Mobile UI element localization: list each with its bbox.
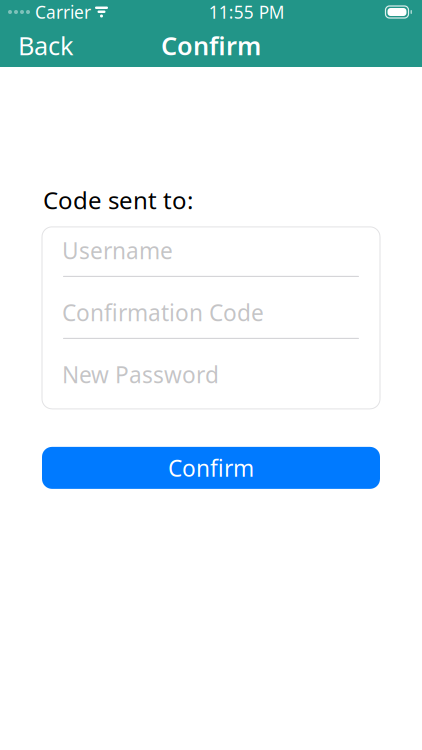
staticText: 11:55 PM: [209, 0, 285, 23]
staticText: Back: [18, 29, 74, 62]
staticText: Confirmation Code: [62, 297, 264, 327]
staticText: Carrier: [35, 0, 91, 23]
button[interactable]: Back: [8, 23, 84, 68]
staticText: Code sent to:: [43, 184, 193, 216]
staticText: New Password: [62, 359, 219, 389]
button[interactable]: Confirm: [42, 447, 380, 489]
staticText: Confirm: [168, 453, 254, 483]
staticText: Username: [62, 235, 173, 265]
staticText: Confirm: [161, 29, 261, 62]
